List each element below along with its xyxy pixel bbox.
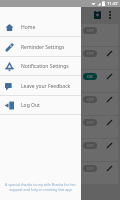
button[interactable]: Edit xyxy=(105,141,114,150)
button[interactable]: OFF xyxy=(83,27,97,34)
button[interactable]: Gallery xyxy=(93,10,102,20)
button[interactable]: Wake up xyxy=(2,70,118,92)
button[interactable]: Log Out xyxy=(0,95,81,115)
staticText: Wake up xyxy=(4,50,25,57)
staticText: A special thanks to my wife Bracha for h… xyxy=(4,182,77,192)
button[interactable]: Wake up xyxy=(2,93,118,115)
button[interactable]: Notification Settings xyxy=(0,56,81,76)
button[interactable]: Wake up xyxy=(2,24,118,46)
staticText: Log Out xyxy=(21,102,40,109)
button[interactable]: Edit xyxy=(105,72,114,81)
staticText: Wake up xyxy=(4,27,25,34)
button[interactable]: Edit xyxy=(105,118,114,127)
staticText: OFF xyxy=(87,97,94,102)
button[interactable]: Wake up xyxy=(2,116,118,138)
button[interactable]: Wake up xyxy=(2,139,118,161)
staticText: ON xyxy=(87,74,93,79)
staticText: Home xyxy=(21,24,36,31)
button[interactable]: Wake up xyxy=(2,162,118,184)
button[interactable]: OFF xyxy=(83,50,97,57)
staticText: OFF xyxy=(87,51,94,56)
button[interactable]: More options xyxy=(106,10,113,20)
staticText: Notification Settings xyxy=(21,63,69,70)
button[interactable]: Wake up xyxy=(2,47,118,69)
button[interactable] xyxy=(0,7,120,200)
button[interactable]: OFF xyxy=(83,142,97,149)
button[interactable]: Reminder Settings xyxy=(0,37,81,57)
staticText: Wake up xyxy=(4,73,25,80)
staticText: OFF xyxy=(87,166,94,171)
staticText: Wake up xyxy=(4,96,25,103)
staticText: OFF xyxy=(87,28,94,33)
button[interactable]: Edit xyxy=(105,49,114,58)
button[interactable]: Home xyxy=(0,17,81,37)
staticText: Reminder Settings xyxy=(21,44,65,51)
button[interactable]: Edit xyxy=(105,95,114,104)
button[interactable]: OFF xyxy=(83,165,97,172)
button[interactable]: Leave your Feedback xyxy=(0,76,81,96)
button[interactable]: OFF xyxy=(83,119,97,126)
staticText: OFF xyxy=(87,143,94,148)
staticText: 11:37 xyxy=(107,1,118,7)
staticText: Leave your Feedback xyxy=(21,83,71,90)
staticText: OFF xyxy=(87,120,94,125)
button[interactable]: OFF xyxy=(83,96,97,103)
button[interactable]: ON xyxy=(83,73,97,80)
button[interactable]: Edit xyxy=(105,164,114,173)
